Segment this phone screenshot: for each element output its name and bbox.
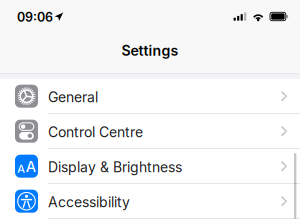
button[interactable]: A <box>0 149 300 184</box>
button[interactable]: General <box>0 79 300 114</box>
staticText: 09:06 <box>17 9 53 25</box>
button[interactable]: Accessibility <box>0 184 300 219</box>
button[interactable]: Control Centre <box>0 114 300 149</box>
staticText: Settings <box>121 42 178 59</box>
staticText: Accessibility <box>48 194 130 210</box>
staticText: Display & Brightness <box>48 159 182 175</box>
staticText: General <box>48 89 98 105</box>
staticText: A <box>26 158 36 175</box>
staticText: Control Centre <box>48 124 143 140</box>
staticText: A <box>17 162 25 175</box>
